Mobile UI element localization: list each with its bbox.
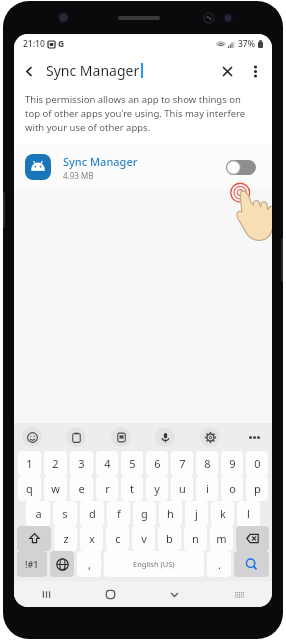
button[interactable]: Sync Manager <box>14 145 272 189</box>
button[interactable]: 1 <box>18 451 41 476</box>
button[interactable]: z <box>54 526 77 551</box>
staticText: v <box>141 531 147 546</box>
button[interactable]: 2 <box>44 451 67 476</box>
button[interactable]: k <box>211 501 234 526</box>
staticText: j <box>195 506 198 521</box>
button[interactable]: English (US) <box>104 551 204 577</box>
staticText: Sync Manager <box>46 61 140 80</box>
staticText: a <box>35 506 42 521</box>
button[interactable]: Toggle Sync Manager permission <box>221 152 261 182</box>
staticText: 8 <box>204 456 211 471</box>
button[interactable]: Change language <box>50 551 74 577</box>
button[interactable]: m <box>210 526 233 551</box>
button[interactable]: a <box>26 501 50 526</box>
button[interactable]: s <box>53 501 77 526</box>
button[interactable]: Hide keyboard <box>142 581 207 607</box>
button[interactable]: , <box>77 551 101 577</box>
staticText: i <box>206 481 209 496</box>
staticText: o <box>229 481 236 496</box>
button[interactable]: 6 <box>146 451 168 476</box>
button[interactable]: r <box>96 476 118 501</box>
staticText: Sync Manager <box>63 154 138 169</box>
button[interactable]: Clear <box>212 56 242 86</box>
staticText: English (US) <box>133 559 175 569</box>
button[interactable]: More <box>244 427 264 447</box>
button[interactable]: Clipboard <box>66 427 86 447</box>
button[interactable]: x <box>80 526 103 551</box>
staticText: z <box>63 531 69 546</box>
staticText: b <box>166 531 173 546</box>
button[interactable]: n <box>184 526 207 551</box>
button[interactable]: Recent apps <box>14 581 78 607</box>
staticText: f <box>117 506 121 521</box>
button[interactable]: c <box>106 526 129 551</box>
staticText: e <box>78 481 85 496</box>
staticText: !#1 <box>25 558 39 570</box>
button[interactable]: e <box>70 476 93 501</box>
staticText: 2 <box>52 456 59 471</box>
button[interactable]: u <box>171 476 193 501</box>
button[interactable]: Back <box>14 56 44 86</box>
button[interactable]: 7 <box>171 451 193 476</box>
button[interactable]: p <box>246 476 268 501</box>
staticText: . <box>218 557 221 572</box>
staticText: s <box>62 506 68 521</box>
staticText: h <box>167 506 174 521</box>
staticText: 3 <box>78 456 85 471</box>
button[interactable]: t <box>121 476 143 501</box>
button[interactable]: Backspace <box>236 526 269 551</box>
button[interactable]: Stickers <box>111 427 131 447</box>
button[interactable]: b <box>158 526 181 551</box>
button[interactable]: h <box>159 501 182 526</box>
button[interactable]: d <box>80 501 104 526</box>
button[interactable]: 5 <box>121 451 143 476</box>
button[interactable]: Emoji <box>22 427 42 447</box>
button[interactable]: More options <box>242 58 268 84</box>
button[interactable]: 0 <box>246 451 268 476</box>
button[interactable]: !#1 <box>17 551 47 577</box>
staticText: m <box>216 531 227 546</box>
staticText: u <box>179 481 186 496</box>
button[interactable]: 4 <box>96 451 118 476</box>
staticText: t <box>130 481 134 496</box>
staticText: 4.93 MB <box>63 170 94 181</box>
staticText: G <box>58 38 65 50</box>
button[interactable]: 8 <box>196 451 218 476</box>
staticText: , <box>88 557 91 572</box>
staticText: 4 <box>104 456 111 471</box>
button[interactable]: v <box>132 526 155 551</box>
button[interactable]: . <box>207 551 231 577</box>
button[interactable]: Keyboard settings <box>200 427 220 447</box>
button[interactable]: Search <box>234 551 269 577</box>
staticText: g <box>141 506 148 521</box>
button[interactable]: y <box>146 476 168 501</box>
button[interactable]: Shift <box>17 526 51 551</box>
button[interactable]: f <box>107 501 130 526</box>
staticText: 5 <box>129 456 136 471</box>
button[interactable]: Voice input <box>155 427 175 447</box>
staticText: y <box>154 481 160 496</box>
button[interactable]: 9 <box>221 451 243 476</box>
button[interactable]: g <box>133 501 156 526</box>
staticText: k <box>220 506 226 521</box>
staticText: q <box>26 481 33 496</box>
staticText: This permission allows an app to show th… <box>25 93 258 134</box>
staticText: c <box>115 531 121 546</box>
button[interactable]: l <box>237 501 260 526</box>
staticText: 7 <box>179 456 186 471</box>
button[interactable]: Home <box>78 581 142 607</box>
button[interactable]: Keyboard <box>207 581 272 607</box>
button[interactable]: i <box>196 476 218 501</box>
staticText: 21:10 <box>23 38 45 50</box>
staticText: w <box>51 481 60 496</box>
staticText: n <box>192 531 199 546</box>
staticText: r <box>105 481 110 496</box>
button[interactable]: q <box>18 476 41 501</box>
button[interactable]: j <box>185 501 208 526</box>
staticText: d <box>89 506 96 521</box>
staticText: 6 <box>154 456 161 471</box>
button[interactable]: 3 <box>70 451 93 476</box>
button[interactable]: o <box>221 476 243 501</box>
button[interactable]: w <box>44 476 67 501</box>
staticText: 0 <box>254 456 261 471</box>
